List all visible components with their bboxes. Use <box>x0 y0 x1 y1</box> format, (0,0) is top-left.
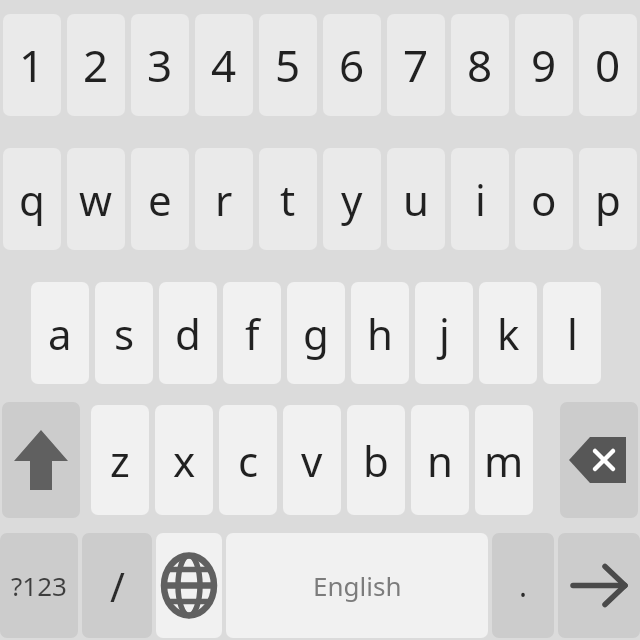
staticText: c <box>238 432 259 489</box>
button[interactable]: f <box>223 282 281 384</box>
button[interactable]: y <box>323 148 381 250</box>
staticText: ?123 <box>11 568 67 603</box>
staticText: 7 <box>403 35 429 95</box>
button[interactable]: q <box>3 148 61 250</box>
button[interactable]: 7 <box>387 14 445 116</box>
button[interactable]: g <box>287 282 345 384</box>
staticText: 8 <box>467 35 493 95</box>
staticText: r <box>215 171 233 228</box>
staticText: n <box>427 432 453 489</box>
staticText: y <box>341 171 363 228</box>
button[interactable]: . <box>492 533 554 638</box>
staticText: m <box>484 432 524 489</box>
staticText: d <box>175 305 201 362</box>
staticText: o <box>531 171 557 228</box>
button[interactable]: 6 <box>323 14 381 116</box>
button[interactable]: 9 <box>515 14 573 116</box>
button[interactable]: p <box>579 148 637 250</box>
button[interactable]: l <box>543 282 601 384</box>
button[interactable]: / <box>82 533 152 638</box>
staticText: . <box>519 565 528 606</box>
button[interactable]: Enter <box>558 533 640 638</box>
staticText: q <box>19 171 45 228</box>
staticText: v <box>301 432 323 489</box>
staticText: 0 <box>595 35 621 95</box>
button[interactable]: r <box>195 148 253 250</box>
button[interactable]: m <box>475 405 533 515</box>
button[interactable]: Shift <box>2 402 80 518</box>
button[interactable]: n <box>411 405 469 515</box>
button[interactable]: b <box>347 405 405 515</box>
button[interactable]: u <box>387 148 445 250</box>
staticText: 6 <box>339 35 365 95</box>
button[interactable]: o <box>515 148 573 250</box>
staticText: e <box>148 171 172 228</box>
button[interactable]: ?123 <box>0 533 78 638</box>
staticText: h <box>367 305 393 362</box>
staticText: x <box>173 432 196 489</box>
staticText: w <box>79 171 113 228</box>
button[interactable]: j <box>415 282 473 384</box>
staticText: s <box>114 305 135 362</box>
staticText: 9 <box>531 35 557 95</box>
button[interactable]: k <box>479 282 537 384</box>
button[interactable]: 5 <box>259 14 317 116</box>
staticText: 2 <box>83 35 109 95</box>
staticText: k <box>497 305 520 362</box>
button[interactable]: e <box>131 148 189 250</box>
button[interactable]: 2 <box>67 14 125 116</box>
button[interactable]: d <box>159 282 217 384</box>
staticText: 5 <box>275 35 301 95</box>
staticText: u <box>403 171 429 228</box>
staticText: 3 <box>147 35 173 95</box>
staticText: z <box>110 432 130 489</box>
button[interactable]: 8 <box>451 14 509 116</box>
button[interactable]: a <box>31 282 89 384</box>
button[interactable]: 0 <box>579 14 637 116</box>
button[interactable]: t <box>259 148 317 250</box>
button[interactable]: c <box>219 405 277 515</box>
button[interactable]: x <box>155 405 213 515</box>
staticText: 1 <box>19 35 45 95</box>
button[interactable]: z <box>91 405 149 515</box>
staticText: l <box>567 305 578 362</box>
button[interactable]: 1 <box>3 14 61 116</box>
button[interactable]: w <box>67 148 125 250</box>
staticText: a <box>48 305 72 362</box>
staticText: j <box>439 305 450 362</box>
staticText: g <box>303 305 329 362</box>
staticText: b <box>363 432 389 489</box>
staticText: 4 <box>211 35 237 95</box>
button[interactable]: Backspace <box>560 402 638 518</box>
staticText: i <box>475 171 486 228</box>
button[interactable]: 4 <box>195 14 253 116</box>
staticText: t <box>280 171 296 228</box>
button[interactable]: 3 <box>131 14 189 116</box>
staticText: / <box>110 559 125 613</box>
button[interactable]: h <box>351 282 409 384</box>
staticText: English <box>313 568 402 603</box>
button[interactable]: Change input language <box>156 533 222 638</box>
staticText: p <box>595 171 621 228</box>
button[interactable]: v <box>283 405 341 515</box>
staticText: f <box>245 305 260 362</box>
button[interactable]: s <box>95 282 153 384</box>
button[interactable]: English <box>226 533 488 638</box>
button[interactable]: i <box>451 148 509 250</box>
